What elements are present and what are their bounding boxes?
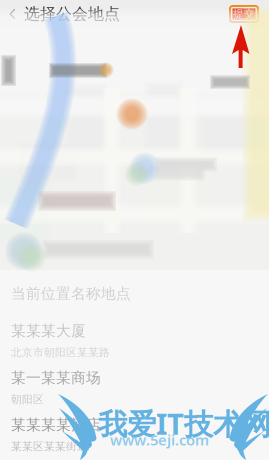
button[interactable]: 某某某大厦 [0, 317, 269, 364]
staticText: 某某某大厦 [11, 322, 86, 340]
staticText: www.5eji.com [110, 430, 209, 449]
staticText: 提交 [233, 7, 255, 20]
staticText: 某一某某商场 [11, 369, 101, 387]
button[interactable]: 某某某某酒店 [0, 411, 269, 458]
staticText: 朝阳区 [11, 393, 44, 406]
button[interactable]: 提交 [230, 6, 258, 22]
staticText: 某某区某某街道 [11, 440, 88, 453]
staticText: 当前位置名称地点 [11, 284, 131, 302]
button[interactable]: 当前位置名称地点 [0, 270, 269, 317]
staticText: 北京市朝阳区某某路 [11, 346, 110, 359]
staticText: 我爱IT技术网 [98, 404, 269, 443]
staticText: 选择公会地点 [24, 4, 120, 24]
staticText: 某某某某酒店 [11, 416, 101, 434]
button[interactable]: 某一某某商场 [0, 364, 269, 411]
button[interactable]: Back [0, 0, 24, 27]
